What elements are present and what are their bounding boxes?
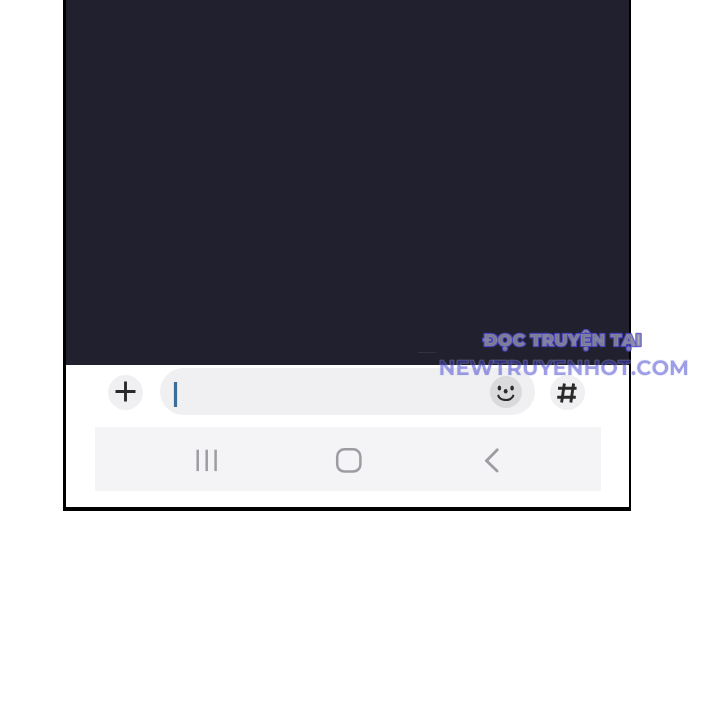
button[interactable]: Add attachment — [108, 375, 143, 410]
button[interactable]: Recent apps — [192, 446, 221, 475]
button[interactable]: Back — [478, 446, 507, 475]
button[interactable]: Home — [334, 446, 363, 475]
button[interactable]: Emoji — [490, 376, 522, 408]
button[interactable]: Hashtag — [550, 375, 585, 410]
button[interactable]: Message input — [160, 368, 535, 415]
